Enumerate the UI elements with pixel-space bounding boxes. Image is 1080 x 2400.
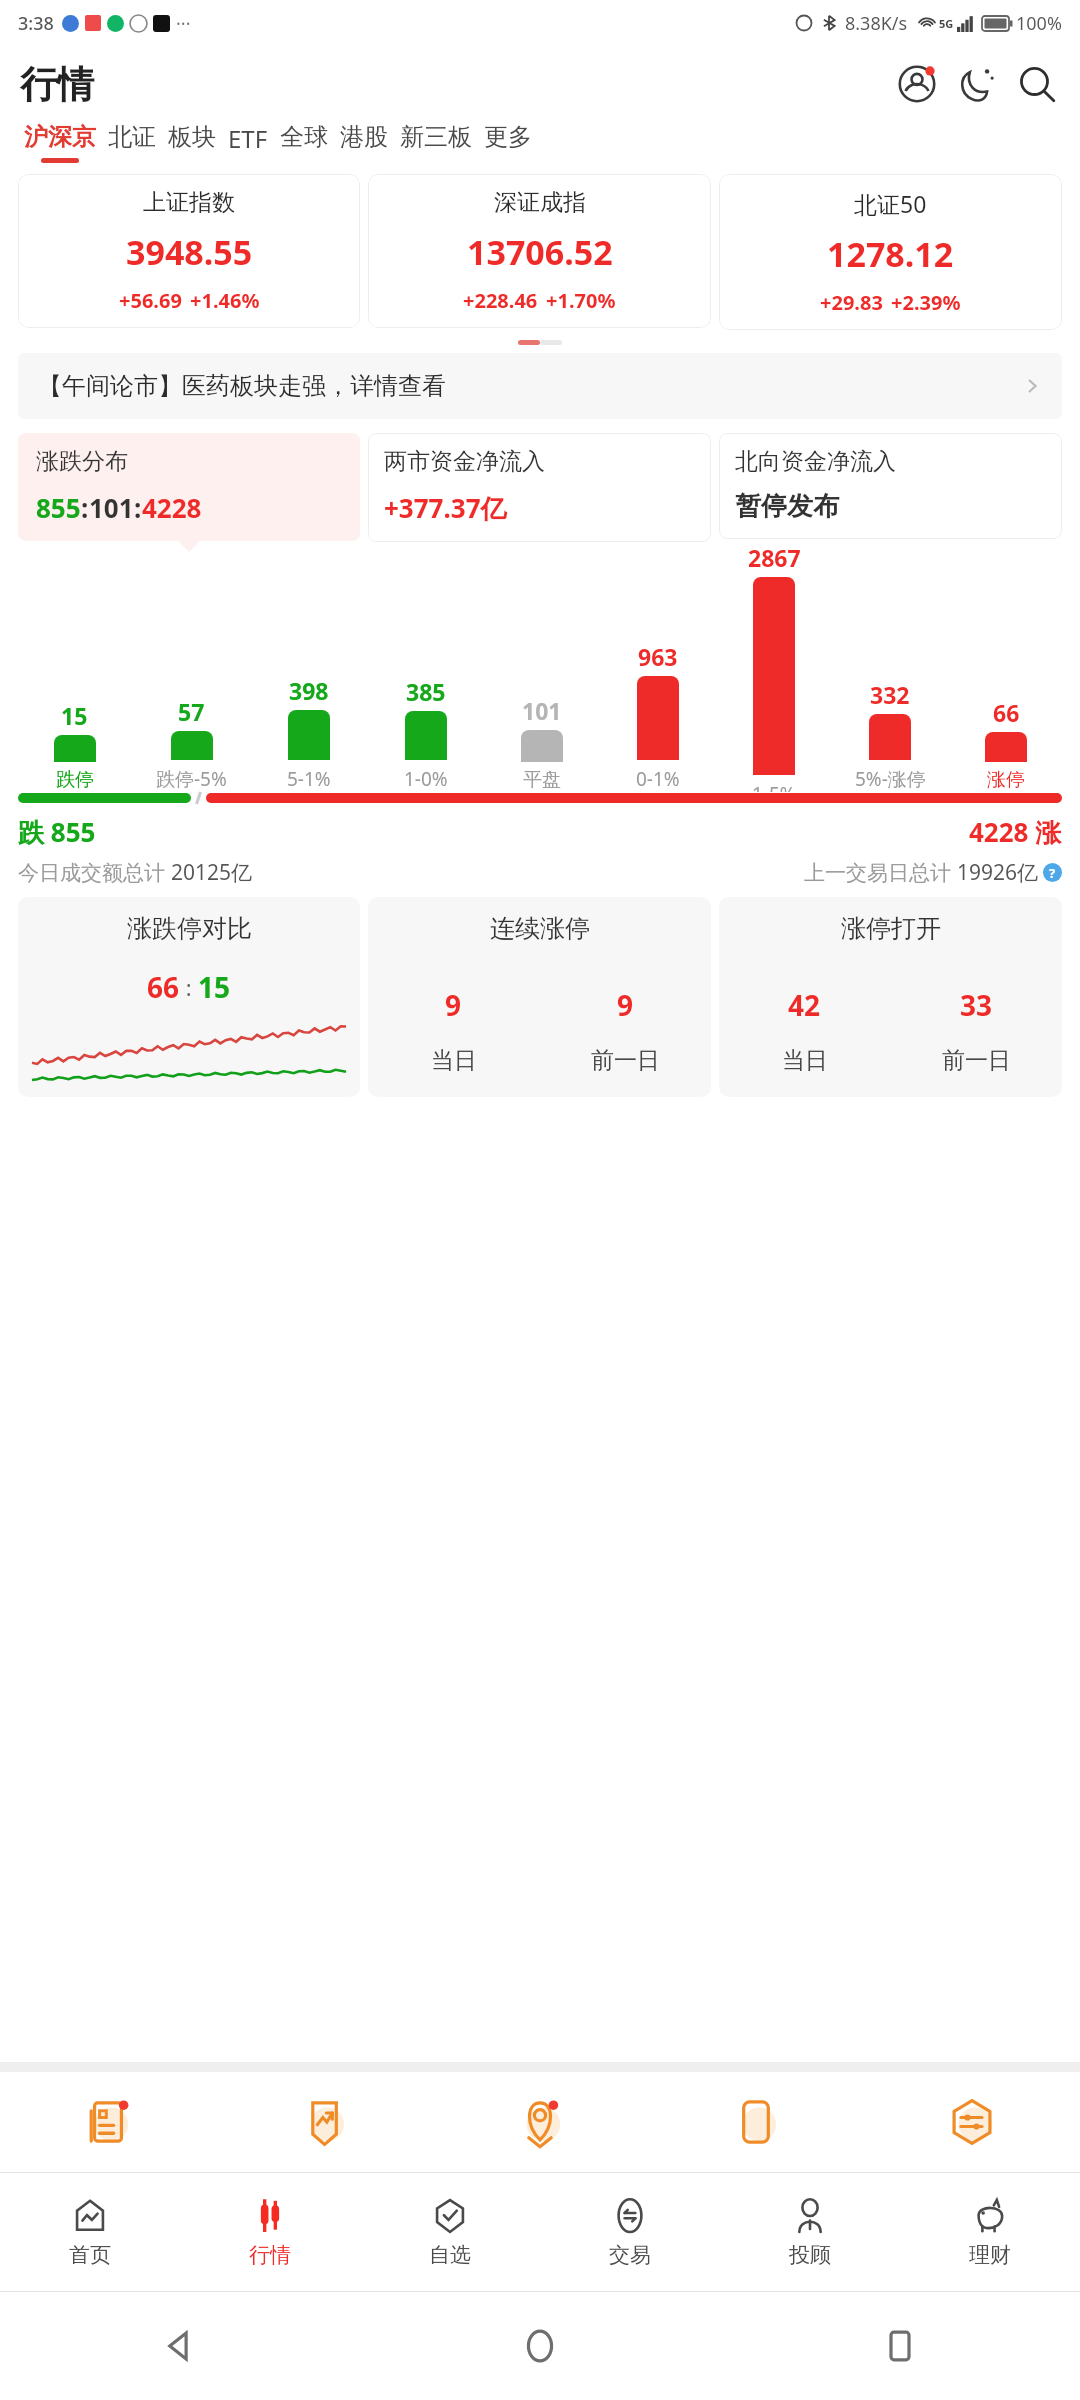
- button[interactable]: 板块: [162, 122, 222, 163]
- staticText: +228.46: [463, 287, 538, 314]
- staticText: ···: [176, 11, 191, 36]
- staticText: ?: [1049, 864, 1056, 882]
- button[interactable]: Help: [1043, 863, 1062, 882]
- staticText: 跌停: [56, 768, 94, 792]
- staticText: 101: [89, 490, 134, 525]
- button[interactable]: 自选: [360, 2173, 540, 2291]
- button[interactable]: Tools: [864, 2072, 1080, 2172]
- staticText: 0-1%: [636, 766, 680, 792]
- staticText: 新三板: [400, 122, 472, 152]
- button[interactable]: 新三板: [394, 122, 478, 163]
- staticText: 13706.52: [467, 229, 613, 275]
- staticText: 4228 涨: [969, 814, 1062, 850]
- staticText: 5G: [939, 16, 954, 31]
- button[interactable]: Account: [896, 63, 938, 105]
- staticText: 北证: [108, 122, 156, 152]
- staticText: 平盘: [523, 768, 561, 792]
- staticText: 2867: [748, 542, 801, 573]
- button[interactable]: ETF: [222, 122, 274, 166]
- staticText: ETF: [228, 122, 268, 155]
- staticText: 15: [198, 968, 231, 1006]
- staticText: 首页: [69, 2242, 111, 2268]
- button[interactable]: 首页: [0, 2173, 180, 2291]
- staticText: 9: [445, 986, 462, 1024]
- button[interactable]: 沪深京: [18, 122, 102, 163]
- staticText: 398: [289, 675, 329, 706]
- staticText: 20125亿: [171, 858, 253, 887]
- button[interactable]: 行情: [180, 2173, 360, 2291]
- button[interactable]: ETF: [648, 2072, 864, 2172]
- staticText: 100%: [1016, 11, 1062, 36]
- button[interactable]: 上证指数: [18, 174, 360, 328]
- button[interactable]: 涨停打开: [719, 897, 1062, 1097]
- staticText: 42: [788, 986, 821, 1024]
- staticText: 385: [406, 676, 446, 707]
- staticText: +377.37亿: [384, 490, 507, 526]
- staticText: 前一日: [942, 1046, 1011, 1075]
- staticText: 101: [522, 695, 562, 726]
- staticText: +1.70%: [546, 287, 616, 314]
- button[interactable]: Search: [1016, 63, 1058, 105]
- staticText: +2.39%: [891, 289, 961, 316]
- button[interactable]: 深证成指: [368, 174, 711, 328]
- staticText: 66: [993, 697, 1020, 728]
- staticText: 3948.55: [126, 229, 253, 275]
- staticText: 5%-涨停: [855, 766, 926, 792]
- staticText: 3:38: [18, 11, 54, 36]
- staticText: 332: [870, 679, 910, 710]
- button[interactable]: 涨跌分布: [18, 433, 360, 541]
- staticText: 963: [638, 641, 678, 672]
- button[interactable]: 港股: [334, 122, 394, 163]
- button[interactable]: 连续涨停: [368, 897, 711, 1097]
- button[interactable]: 投顾: [720, 2173, 900, 2291]
- button[interactable]: 交易: [540, 2173, 720, 2291]
- staticText: 暂停发布: [735, 490, 839, 523]
- button[interactable]: 更多: [478, 122, 538, 163]
- staticText: 行情: [249, 2242, 291, 2268]
- staticText: 1278.12: [827, 231, 954, 277]
- staticText: 涨跌分布: [36, 447, 128, 476]
- staticText: 5-1%: [287, 766, 331, 792]
- staticText: 跌 855: [18, 814, 96, 850]
- staticText: :: [180, 972, 198, 1002]
- button[interactable]: Trend: [216, 2072, 432, 2172]
- button[interactable]: Radar: [432, 2072, 648, 2172]
- staticText: 前一日: [591, 1046, 660, 1075]
- staticText: 当日: [431, 1046, 477, 1075]
- button[interactable]: 【午间论市】医药板块走强，详情查看: [18, 353, 1062, 419]
- staticText: 北证50: [854, 188, 927, 219]
- staticText: 33: [960, 986, 993, 1024]
- button[interactable]: 两市资金净流入: [368, 433, 711, 542]
- button[interactable]: 北证: [102, 122, 162, 163]
- button[interactable]: 全球: [274, 122, 334, 163]
- staticText: 涨停打开: [841, 913, 941, 944]
- button[interactable]: 北证50: [719, 174, 1062, 330]
- button[interactable]: 涨跌停对比: [18, 897, 360, 1097]
- staticText: 当日: [782, 1046, 828, 1075]
- staticText: 【午间论市】医药板块走强，详情查看: [38, 371, 446, 401]
- staticText: 投顾: [789, 2242, 831, 2268]
- staticText: 行情: [20, 61, 94, 108]
- staticText: 自选: [429, 2242, 471, 2268]
- staticText: 57: [178, 696, 205, 727]
- staticText: :: [134, 490, 142, 525]
- staticText: 全球: [280, 122, 328, 152]
- staticText: 15: [61, 700, 88, 731]
- staticText: 1-0%: [404, 766, 448, 792]
- staticText: 9: [617, 986, 634, 1024]
- staticText: 北向资金净流入: [735, 447, 896, 476]
- button[interactable]: Night mode: [956, 63, 998, 105]
- staticText: 上证指数: [143, 188, 235, 217]
- staticText: +1.46%: [190, 287, 260, 314]
- staticText: +29.83: [820, 289, 883, 316]
- button[interactable]: 理财: [900, 2173, 1080, 2291]
- staticText: 4228: [142, 490, 202, 525]
- button[interactable]: News: [0, 2072, 216, 2172]
- staticText: 连续涨停: [490, 913, 590, 944]
- staticText: 今日成交额总计: [18, 858, 171, 887]
- staticText: 19926亿: [957, 858, 1039, 887]
- button[interactable]: 北向资金净流入: [719, 433, 1062, 539]
- staticText: 涨跌停对比: [127, 913, 252, 944]
- staticText: 两市资金净流入: [384, 447, 545, 476]
- staticText: 交易: [609, 2242, 651, 2268]
